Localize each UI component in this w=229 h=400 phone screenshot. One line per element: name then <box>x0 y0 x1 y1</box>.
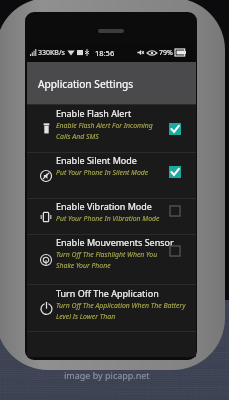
button[interactable] <box>27 235 196 284</box>
other: Vibration mode <box>40 211 52 223</box>
button[interactable] <box>27 285 196 331</box>
staticText: Calls And SMS <box>56 132 99 141</box>
staticText: Put Your Phone In Vibration Mode <box>56 214 160 223</box>
button[interactable] <box>27 153 196 198</box>
button[interactable]: Unchecked <box>169 205 181 217</box>
staticText: Turn Off The Flashlight When You <box>56 250 158 259</box>
staticText: 330KB/s <box>38 48 65 58</box>
other: Movement sensor <box>40 254 52 266</box>
staticText: Enable Silent Mode <box>56 154 137 166</box>
button[interactable]: Checked <box>169 166 181 178</box>
button[interactable]: Application Settings <box>27 62 196 105</box>
other: Silent mode <box>40 170 52 182</box>
staticText: Put Your Phone In Silent Mode <box>56 168 149 177</box>
staticText: Level Is Lower Than <box>56 312 116 321</box>
button[interactable]: Unchecked <box>169 245 181 257</box>
staticText: 79% <box>159 48 173 58</box>
staticText: Enable Flash Alert <box>56 107 132 119</box>
staticText: 18:56 <box>95 48 115 58</box>
staticText: Enable Flash Alert For Incoming <box>56 121 153 130</box>
staticText: Turn Off The Application <box>56 287 159 299</box>
button[interactable] <box>27 105 196 152</box>
staticText: Enable Mouvements Sensor <box>56 236 174 248</box>
staticText: Enable Vibration Mode <box>56 200 152 212</box>
staticText: Turn Off The Application When The Batter… <box>56 301 186 310</box>
staticText: Application Settings <box>38 77 134 91</box>
button[interactable] <box>27 199 196 234</box>
staticText: image by picapp.net <box>64 369 150 381</box>
button[interactable]: Checked <box>169 123 181 135</box>
other: Power <box>40 302 53 315</box>
other: Flashlight <box>40 122 53 135</box>
staticText: Shake Your Phone <box>56 261 111 270</box>
